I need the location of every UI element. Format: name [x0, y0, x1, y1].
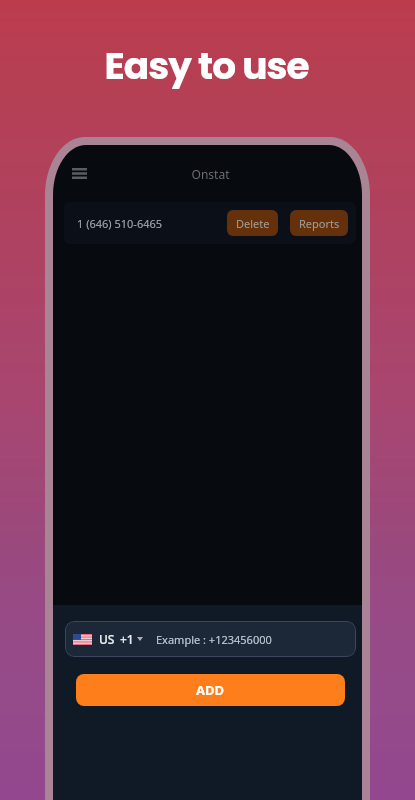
staticText: 1 (646) 510-6465 [77, 216, 163, 231]
staticText: Onstat [56, 166, 362, 182]
staticText: Delete [236, 216, 270, 231]
staticText: Example : +123456000 [156, 632, 272, 647]
staticText: +1 [120, 631, 134, 647]
staticText: US [99, 631, 115, 647]
button[interactable]: Reports [290, 210, 348, 236]
button[interactable]: Menu [64, 158, 94, 188]
staticText: Easy to use [0, 40, 414, 93]
button[interactable]: ADD [76, 674, 345, 706]
staticText: ADD [196, 681, 225, 699]
button[interactable]: Delete [227, 210, 278, 236]
button[interactable]: 1 (646) 510-6465 [64, 202, 356, 244]
staticText: Reports [299, 216, 340, 231]
button[interactable]: US [65, 621, 356, 657]
